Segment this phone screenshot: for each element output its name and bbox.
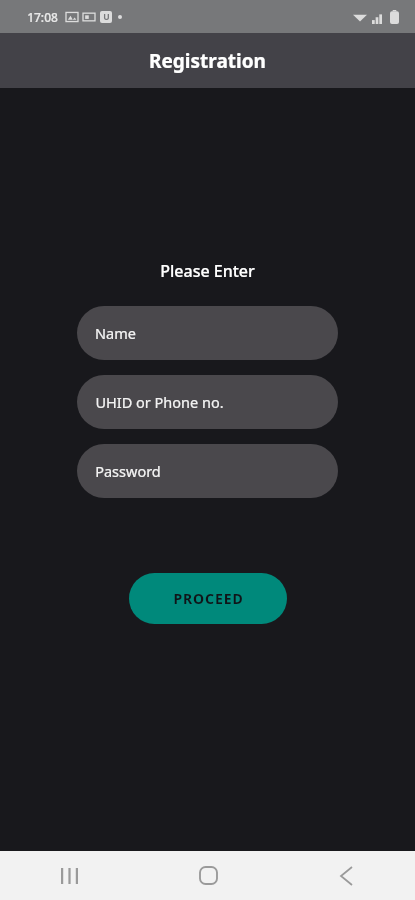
button[interactable]: Home bbox=[139, 851, 277, 900]
staticText: Name bbox=[95, 323, 136, 343]
button[interactable]: Name bbox=[77, 306, 338, 360]
staticText: U bbox=[103, 11, 110, 23]
staticText: 17:08 bbox=[27, 9, 58, 25]
button[interactable]: UHID or Phone no. bbox=[77, 375, 338, 429]
button[interactable]: Back bbox=[277, 851, 415, 900]
button[interactable]: Recent apps bbox=[0, 851, 139, 900]
staticText: PROCEED bbox=[173, 589, 244, 608]
staticText: Registration bbox=[149, 48, 266, 74]
staticText: UHID or Phone no. bbox=[95, 392, 224, 412]
staticText: Please Enter bbox=[160, 260, 255, 282]
staticText: Password bbox=[95, 461, 161, 481]
button[interactable]: Password bbox=[77, 444, 338, 498]
button[interactable]: PROCEED bbox=[129, 573, 287, 624]
